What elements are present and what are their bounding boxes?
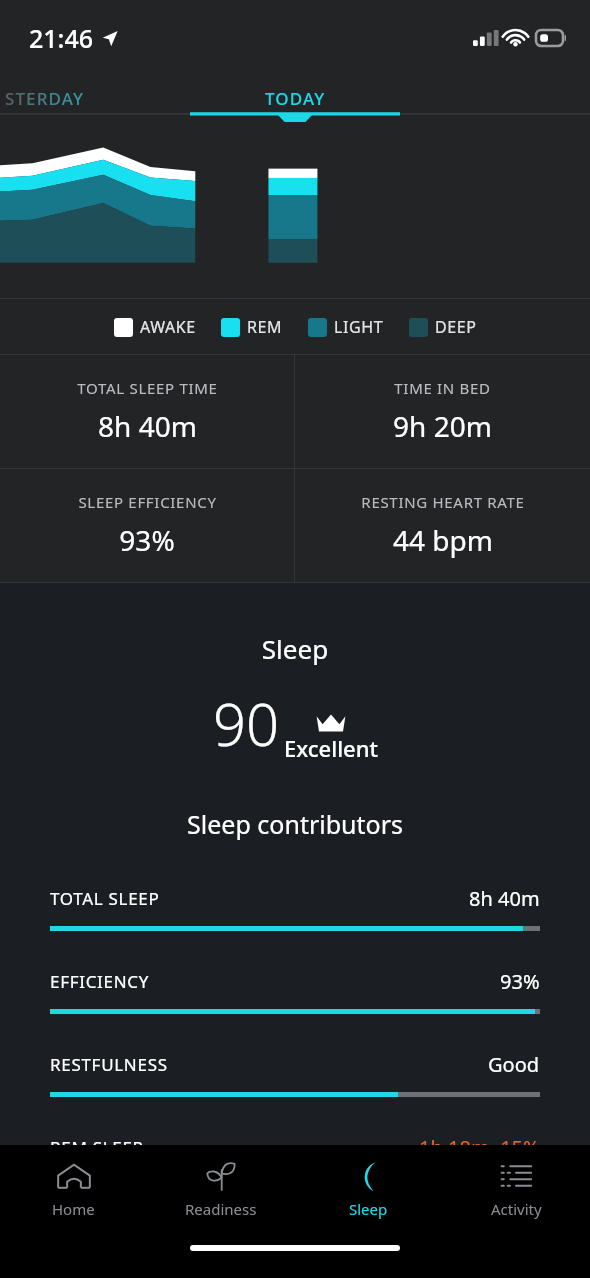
button[interactable]: TODAY <box>190 75 400 122</box>
staticText: AWAKE <box>140 316 196 338</box>
button[interactable]: SLEEP EFFICIENCY <box>0 469 294 582</box>
button[interactable]: TOTAL SLEEP TIME <box>0 355 294 468</box>
staticText: 1h 18m. 15% <box>419 1134 540 1161</box>
staticText: 9h 20m <box>393 407 492 445</box>
staticText: Sleep <box>349 1199 388 1219</box>
staticText: 21:46 <box>29 21 94 55</box>
button[interactable]: DEEP <box>409 316 477 338</box>
staticText: 44 bpm <box>393 521 493 559</box>
button[interactable]: REM SLEEP <box>0 1134 590 1161</box>
staticText: 8h 40m <box>98 407 197 445</box>
staticText: TIME IN BED <box>394 378 491 398</box>
staticText: RESTING HEART RATE <box>361 492 525 512</box>
staticText: TOTAL SLEEP <box>50 887 160 910</box>
staticText: TODAY <box>265 87 326 110</box>
staticText: 8h 40m <box>469 885 540 912</box>
button[interactable]: LIGHT <box>308 316 384 338</box>
button[interactable]: RESTING HEART RATE <box>295 469 590 582</box>
staticText: Activity <box>491 1199 542 1219</box>
button[interactable]: Activity <box>442 1145 590 1233</box>
staticText: 93% <box>500 968 540 995</box>
button[interactable]: Home <box>0 1145 147 1233</box>
staticText: EFFICIENCY <box>50 970 150 993</box>
button[interactable]: Sleep <box>294 1145 442 1233</box>
staticText: Good <box>488 1051 540 1078</box>
staticText: RESTFULNESS <box>50 1053 168 1076</box>
staticText: Home <box>52 1199 95 1219</box>
button[interactable]: RESTFULNESS <box>0 1051 590 1134</box>
staticText: DEEP <box>435 316 477 338</box>
staticText: TOTAL SLEEP TIME <box>77 378 218 398</box>
button[interactable]: REM <box>221 316 283 338</box>
button[interactable]: STERDAY <box>0 75 180 122</box>
button[interactable]: Readiness <box>147 1145 294 1233</box>
button[interactable]: EFFICIENCY <box>0 968 590 1051</box>
staticText: REM SLEEP <box>50 1136 144 1159</box>
staticText: 90 <box>213 684 280 763</box>
staticText: SLEEP EFFICIENCY <box>78 492 217 512</box>
staticText: LIGHT <box>334 316 384 338</box>
button[interactable]: TOTAL SLEEP <box>0 885 590 968</box>
staticText: 93% <box>119 521 175 559</box>
button[interactable]: AWAKE <box>114 316 196 338</box>
staticText: STERDAY <box>5 87 84 110</box>
staticText: Readiness <box>185 1199 257 1219</box>
button[interactable]: TIME IN BED <box>295 355 590 468</box>
staticText: Sleep contributors <box>0 807 590 841</box>
staticText: Sleep <box>0 631 590 666</box>
staticText: Excellent <box>284 733 378 763</box>
staticText: REM <box>247 316 283 338</box>
